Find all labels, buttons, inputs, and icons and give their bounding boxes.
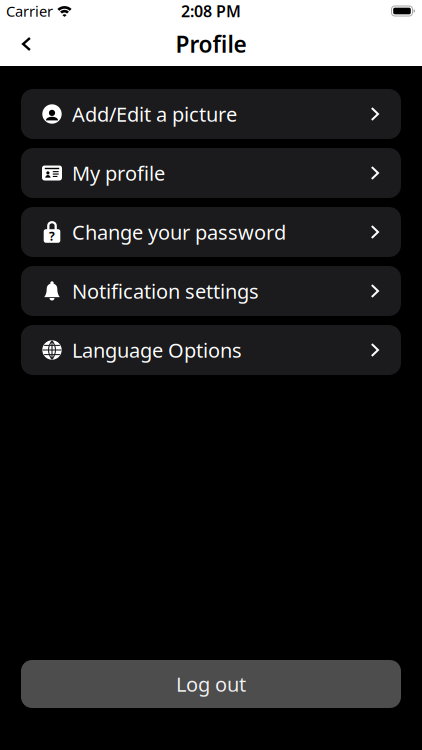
staticText: Log out	[176, 671, 246, 697]
button[interactable]: Language Options	[21, 325, 401, 375]
staticText: Notification settings	[72, 278, 259, 304]
staticText: Profile	[175, 29, 246, 59]
button[interactable]: Add/Edit a picture	[21, 89, 401, 139]
button[interactable]: My profile	[21, 148, 401, 198]
staticText: My profile	[72, 160, 165, 186]
staticText: ?	[49, 228, 55, 244]
button[interactable]: Back	[0, 22, 45, 66]
button[interactable]: Log out	[21, 660, 401, 708]
staticText: Change your password	[72, 219, 286, 245]
staticText: 2:08 PM	[181, 0, 241, 22]
button[interactable]: ?	[21, 207, 401, 257]
button[interactable]: Notification settings	[21, 266, 401, 316]
staticText: Carrier	[6, 1, 53, 21]
staticText: Add/Edit a picture	[72, 101, 237, 127]
staticText: Language Options	[72, 337, 242, 363]
